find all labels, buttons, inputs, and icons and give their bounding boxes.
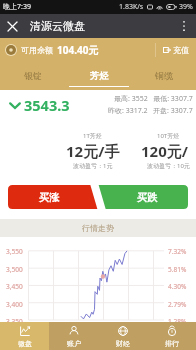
staticText: 波动盈亏：1元 bbox=[73, 162, 113, 170]
staticText: 昨收: 3317.2 开盘: 3307.7 bbox=[108, 106, 193, 116]
staticText: 1.83K/s bbox=[119, 2, 144, 12]
staticText: 可用余额 bbox=[21, 45, 53, 55]
staticText: 财经 bbox=[116, 339, 130, 348]
staticText: 2.79% bbox=[168, 300, 187, 309]
staticText: 微盘 bbox=[18, 339, 32, 348]
staticText: 1T芳烃 bbox=[83, 132, 102, 140]
button[interactable]: More options bbox=[172, 14, 196, 38]
staticText: 清源云微盘 bbox=[30, 19, 85, 33]
staticText: 铜缆 bbox=[155, 70, 173, 81]
staticText: 3,400 bbox=[6, 300, 23, 309]
staticText: 波动盈亏：10元 bbox=[147, 162, 190, 170]
staticText: 买涨 bbox=[39, 191, 59, 204]
button[interactable]: 排行 bbox=[147, 322, 196, 350]
button[interactable]: 银锭 bbox=[0, 62, 66, 90]
staticText: 3543.3 bbox=[24, 95, 70, 115]
staticText: 39% bbox=[179, 2, 193, 12]
staticText: 3,500 bbox=[6, 265, 23, 274]
button[interactable]: 微盘 bbox=[0, 322, 49, 350]
staticText: 12元/手 bbox=[66, 141, 120, 161]
staticText: 芳烃 bbox=[90, 70, 108, 81]
staticText: 晚上7:39 bbox=[3, 2, 31, 12]
staticText: 10T芳烃 bbox=[157, 132, 180, 140]
staticText: 3,350 bbox=[6, 317, 23, 326]
staticText: 排行 bbox=[165, 339, 179, 348]
staticText: 充值 bbox=[173, 45, 189, 55]
button[interactable]: 芳烃 bbox=[66, 62, 131, 90]
staticText: 104.40元 bbox=[57, 43, 99, 57]
staticText: 7.32% bbox=[168, 247, 187, 256]
staticText: 1.28% bbox=[168, 317, 187, 326]
staticText: 120元/手 bbox=[141, 141, 196, 161]
button[interactable]: Close bbox=[0, 14, 24, 38]
staticText: 最高: 3552 最低: 3307.7 bbox=[114, 94, 193, 104]
staticText: 账户 bbox=[67, 339, 81, 348]
staticText: 5.81% bbox=[168, 265, 187, 274]
button[interactable]: 账户 bbox=[49, 322, 98, 350]
staticText: 3,550 bbox=[6, 247, 23, 256]
button[interactable]: 买涨 bbox=[0, 185, 98, 209]
staticText: 行情走势 bbox=[82, 223, 114, 233]
button[interactable]: 财经 bbox=[98, 322, 147, 350]
staticText: 银锭 bbox=[24, 70, 42, 81]
button[interactable]: 10T芳烃 bbox=[141, 127, 196, 174]
button[interactable]: 1T芳烃 bbox=[52, 127, 133, 174]
staticText: 买跌 bbox=[137, 191, 157, 204]
staticText: 4.30% bbox=[168, 282, 187, 291]
staticText: 3,450 bbox=[6, 282, 23, 291]
button[interactable]: 充值 bbox=[156, 38, 196, 62]
button[interactable]: 铜缆 bbox=[131, 62, 196, 90]
button[interactable]: 买跌 bbox=[98, 185, 196, 209]
